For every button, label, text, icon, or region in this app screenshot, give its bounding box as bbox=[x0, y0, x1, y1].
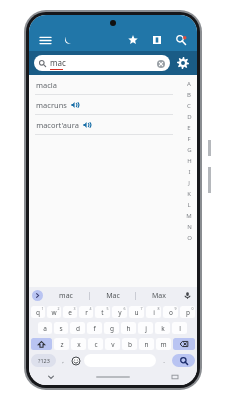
button[interactable]: Shift bbox=[31, 338, 52, 350]
staticText: d bbox=[76, 324, 80, 333]
button[interactable]: Backspace bbox=[173, 338, 195, 350]
staticText: v bbox=[111, 340, 115, 349]
button[interactable]: ?123 bbox=[31, 354, 56, 367]
button[interactable]: n bbox=[139, 338, 154, 350]
button[interactable]: u bbox=[129, 306, 144, 318]
button[interactable]: w bbox=[47, 306, 61, 318]
button[interactable]: q bbox=[31, 306, 45, 318]
staticText: m bbox=[160, 340, 167, 349]
staticText: f bbox=[93, 324, 96, 333]
button[interactable]: Space bbox=[84, 354, 156, 367]
button[interactable]: Settings bbox=[174, 54, 192, 72]
staticText: 7 bbox=[140, 306, 143, 311]
button[interactable]: f bbox=[87, 322, 102, 334]
button[interactable]: Dictionaries bbox=[148, 31, 166, 49]
staticText: , bbox=[62, 357, 64, 365]
button[interactable]: macort'aura bbox=[29, 115, 197, 134]
staticText: 5 bbox=[106, 306, 109, 311]
staticText: 0 bbox=[191, 306, 194, 311]
button[interactable]: More suggestions bbox=[32, 290, 43, 301]
staticText: n bbox=[144, 340, 149, 349]
staticText: p bbox=[186, 308, 190, 317]
button[interactable]: a bbox=[38, 322, 52, 334]
staticText: C bbox=[187, 102, 191, 110]
button[interactable]: Clear bbox=[156, 59, 165, 68]
staticText: G bbox=[187, 146, 192, 154]
button[interactable]: v bbox=[105, 338, 120, 350]
staticText: 1 bbox=[41, 306, 44, 311]
staticText: E bbox=[187, 124, 191, 132]
button[interactable]: p bbox=[180, 306, 195, 318]
button[interactable]: Favourites bbox=[124, 31, 142, 49]
button[interactable]: Search bbox=[172, 354, 195, 367]
button[interactable]: i bbox=[146, 306, 161, 318]
staticText: D bbox=[187, 113, 192, 121]
staticText: B bbox=[187, 91, 191, 99]
button[interactable]: c bbox=[88, 338, 103, 350]
staticText: s bbox=[59, 324, 63, 333]
button[interactable]: z bbox=[54, 338, 69, 350]
staticText: ?123 bbox=[38, 357, 50, 364]
button[interactable]: mac bbox=[34, 55, 170, 71]
staticText: macruns bbox=[36, 100, 67, 110]
staticText: 8 bbox=[157, 306, 160, 311]
button[interactable]: Mac bbox=[90, 287, 135, 304]
staticText: y bbox=[118, 308, 122, 317]
staticText: J bbox=[188, 179, 190, 187]
button[interactable]: Search history bbox=[172, 31, 190, 49]
staticText: z bbox=[60, 340, 64, 349]
staticText: mac bbox=[50, 57, 66, 68]
button[interactable]: Emoji bbox=[69, 353, 83, 368]
staticText: F bbox=[187, 135, 191, 143]
staticText: r bbox=[85, 308, 88, 317]
staticText: . bbox=[163, 357, 165, 365]
staticText: H bbox=[187, 157, 192, 165]
button[interactable]: r bbox=[79, 306, 93, 318]
button[interactable]: macruns bbox=[29, 95, 197, 114]
button[interactable]: o bbox=[163, 306, 178, 318]
staticText: j bbox=[145, 324, 147, 333]
button[interactable]: j bbox=[138, 322, 153, 334]
button[interactable]: h bbox=[121, 322, 136, 334]
staticText: k bbox=[161, 324, 165, 333]
button[interactable]: b bbox=[122, 338, 137, 350]
button[interactable]: t bbox=[95, 306, 110, 318]
staticText: K bbox=[187, 190, 191, 198]
staticText: u bbox=[134, 308, 139, 317]
staticText: b bbox=[128, 340, 132, 349]
button[interactable]: s bbox=[54, 322, 68, 334]
button[interactable]: d bbox=[70, 322, 85, 334]
button[interactable]: mac bbox=[43, 287, 89, 304]
staticText: Max bbox=[152, 291, 166, 301]
button[interactable]: x bbox=[71, 338, 86, 350]
staticText: t bbox=[101, 308, 104, 317]
button[interactable]: macla bbox=[29, 75, 197, 94]
button[interactable]: k bbox=[155, 322, 170, 334]
staticText: 4 bbox=[89, 306, 92, 311]
button[interactable]: Switch keyboard bbox=[169, 371, 181, 383]
button[interactable]: , bbox=[57, 353, 69, 368]
staticText: 9 bbox=[174, 306, 177, 311]
staticText: A bbox=[187, 80, 191, 88]
button[interactable]: m bbox=[156, 338, 171, 350]
button[interactable]: Night mode bbox=[59, 31, 77, 49]
button[interactable]: Hide keyboard bbox=[45, 371, 57, 383]
staticText: w bbox=[51, 308, 57, 317]
button[interactable]: g bbox=[104, 322, 119, 334]
button[interactable]: Alphabet index bbox=[181, 75, 197, 287]
staticText: O bbox=[187, 234, 192, 242]
button[interactable]: Menu bbox=[36, 31, 54, 49]
staticText: Mac bbox=[106, 291, 120, 301]
staticText: 3 bbox=[73, 306, 76, 311]
button[interactable]: y bbox=[112, 306, 127, 318]
button[interactable]: l bbox=[172, 322, 187, 334]
staticText: c bbox=[94, 340, 98, 349]
button[interactable]: e bbox=[63, 306, 77, 318]
staticText: macla bbox=[36, 80, 57, 90]
button[interactable]: Voice input bbox=[181, 289, 194, 302]
staticText: a bbox=[43, 324, 47, 333]
button[interactable]: Max bbox=[136, 287, 181, 304]
staticText: I bbox=[188, 168, 191, 176]
staticText: macort'aura bbox=[36, 120, 79, 130]
